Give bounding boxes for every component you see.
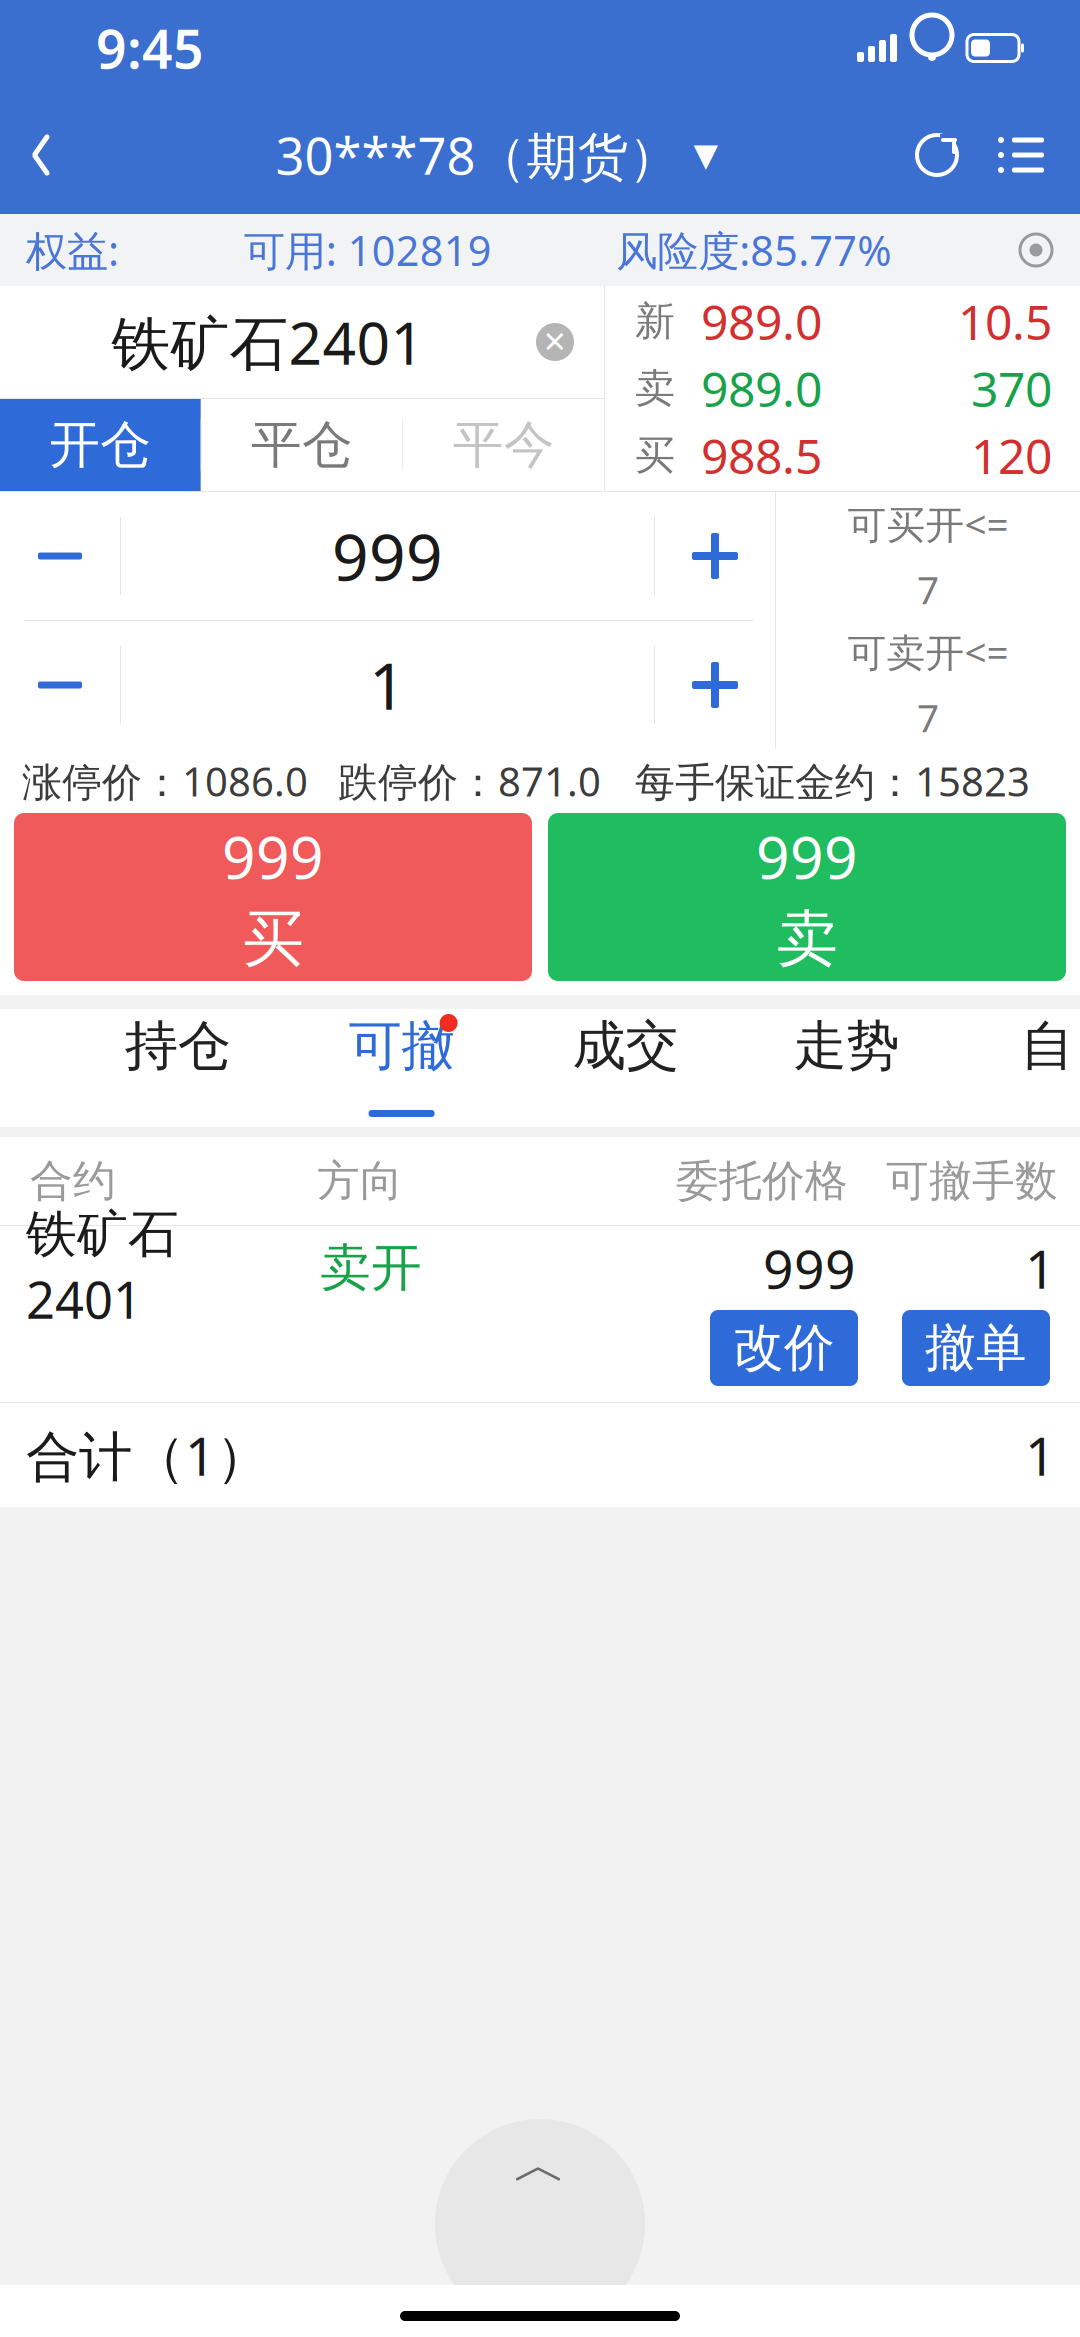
staticText: 委托价格 [676,1155,848,1207]
staticText: 合约 [30,1155,116,1207]
staticText: 988.5 [701,424,822,487]
staticText: 989.0 [701,357,822,420]
button[interactable]: 30***78（期货） [275,103,718,207]
staticText: 9:45 [96,13,204,83]
button[interactable]: 999 [548,813,1066,981]
staticText: 1 [369,642,406,727]
staticText: 成交 [572,1013,678,1079]
staticText: 开仓 [49,414,151,476]
staticText: 可用: 102819 [244,223,492,277]
button[interactable]: 增加 [655,492,775,620]
staticText: 999 [222,817,324,895]
staticText: 卖 [635,364,675,413]
button[interactable]: 返回 [0,108,82,202]
staticText: 可撤手数 [886,1155,1058,1207]
button[interactable]: 撤单 [902,1310,1050,1386]
button[interactable]: 开仓 [0,399,201,491]
staticText: 7 [917,691,939,743]
staticText: 铁矿石2401 [26,1203,179,1333]
button[interactable]: 持仓 [125,1009,231,1127]
button[interactable]: 平仓 [202,399,402,491]
staticText: 10.5 [958,290,1052,353]
staticText: 可卖开<= [847,626,1008,677]
staticText: 风险度:85.77% [616,223,891,277]
staticText: 120 [971,424,1052,487]
staticText: 卖开 [320,1237,422,1299]
button[interactable]: 改价 [710,1310,858,1386]
staticText: 改价 [733,1317,835,1379]
button[interactable]: 自 [1014,1009,1080,1127]
button[interactable]: 菜单 [962,110,1080,200]
staticText: 999 [756,817,858,895]
button[interactable]: 展开 [430,2117,650,2223]
staticText: 平仓 [251,414,353,476]
staticText: 可买开<= [847,498,1008,549]
staticText: 30***78（期货） [275,121,679,189]
staticText: 1 [1025,1233,1056,1303]
staticText: 方向 [317,1155,403,1207]
staticText: 999 [763,1233,856,1303]
staticText: 7 [917,563,939,615]
staticText: 撤单 [925,1317,1027,1379]
staticText: 买 [635,431,675,480]
staticText: ︿ [513,2132,566,2197]
button[interactable]: 减少 [0,492,120,620]
button[interactable]: 成交 [572,1009,678,1127]
button[interactable]: 走势 [793,1009,899,1127]
staticText: 权益: [26,223,119,277]
staticText: 涨停价：1086.0 [22,754,308,807]
staticText: 可撤 [349,1013,455,1079]
button[interactable]: 减少 [0,621,120,749]
staticText: 999 [332,513,443,598]
staticText: ✕ [542,325,567,359]
button[interactable]: 刷新 [912,110,962,200]
button[interactable]: 增加 [655,621,775,749]
staticText: 370 [971,357,1052,420]
staticText: 989.0 [701,290,822,353]
staticText: 每手保证金约：15823 [635,754,1030,807]
staticText: ▼ [693,137,718,173]
staticText: 跌停价：871.0 [338,754,601,807]
staticText: 平今 [453,414,555,476]
staticText: 卖 [776,901,837,977]
button[interactable]: 显示或隐藏资金 [1016,230,1080,270]
staticText: 新 [635,297,675,346]
button[interactable]: 平今 [403,399,604,491]
button[interactable]: 铁矿石2401 [0,286,604,398]
staticText: 铁矿石2401 [111,303,424,381]
staticText: 自 [1020,1013,1073,1079]
staticText: 走势 [793,1013,899,1079]
button[interactable]: 999 [14,813,532,981]
staticText: 持仓 [125,1013,231,1079]
staticText: 1 [1025,1420,1056,1490]
staticText: 合计（1） [26,1420,269,1490]
staticText: 买 [242,901,303,977]
button[interactable]: 可撤 [346,1009,458,1127]
